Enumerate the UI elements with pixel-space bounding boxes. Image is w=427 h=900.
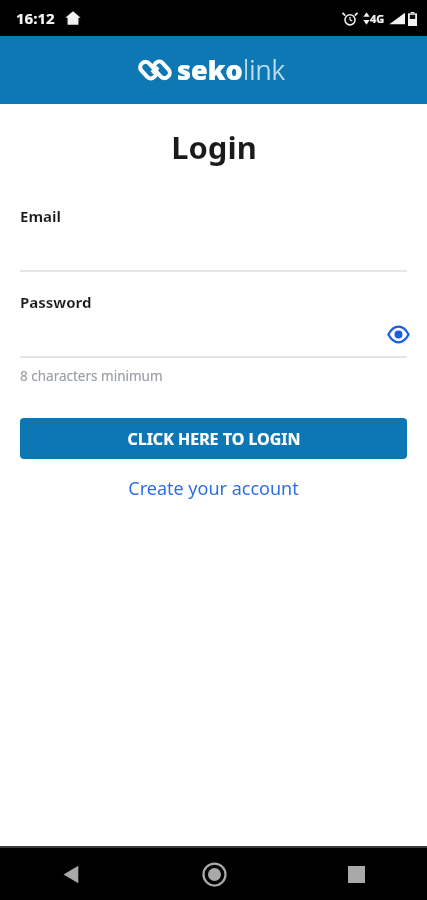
staticText: Password xyxy=(20,292,92,312)
staticText: Create your account xyxy=(128,476,299,501)
staticText: CLICK HERE TO LOGIN xyxy=(127,428,301,450)
button[interactable]: Home xyxy=(143,848,285,900)
staticText: seko xyxy=(177,51,243,88)
staticText: Email xyxy=(20,206,61,226)
staticText: 4G xyxy=(370,11,385,26)
button[interactable]: CLICK HERE TO LOGIN xyxy=(20,418,407,459)
button[interactable]: Show password xyxy=(381,317,415,351)
staticText: 8 characters minimum xyxy=(20,367,163,385)
staticText: link xyxy=(243,51,285,88)
button[interactable]: Back xyxy=(0,848,143,900)
staticText: 16:12 xyxy=(16,8,55,28)
button[interactable]: Recent apps xyxy=(285,848,427,900)
button[interactable]: Create your account xyxy=(0,471,427,505)
staticText: Login xyxy=(171,126,257,168)
